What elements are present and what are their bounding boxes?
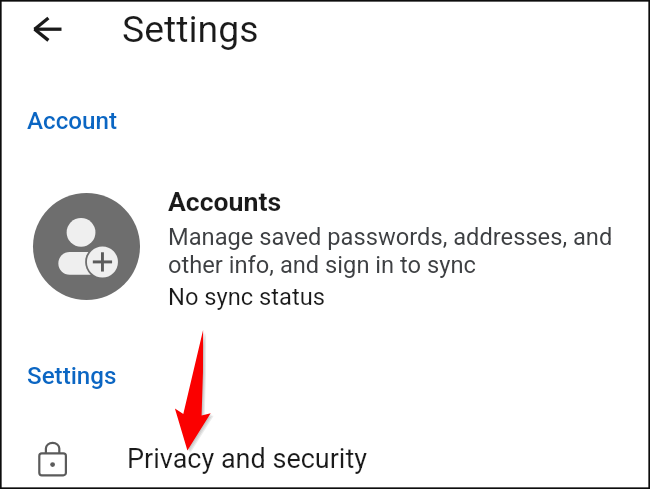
button[interactable]: Navigate up (20, 15, 49, 44)
staticText: No sync status (168, 283, 325, 311)
staticText: Privacy and security (127, 443, 368, 475)
button[interactable]: Accounts (0, 186, 650, 310)
staticText: Settings (27, 362, 117, 390)
staticText: Account (27, 107, 117, 135)
staticText: Accounts (168, 186, 282, 217)
staticText: Manage saved passwords, addresses, and o… (168, 223, 613, 279)
button[interactable]: Privacy and security (0, 419, 650, 480)
staticText: Settings (122, 8, 259, 51)
